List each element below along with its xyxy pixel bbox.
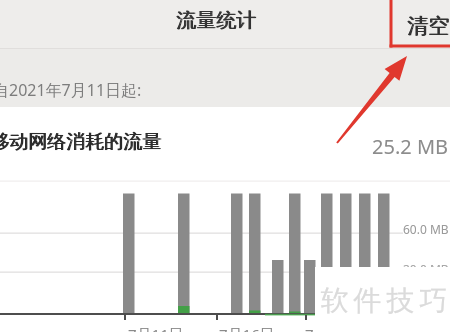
staticText: 移动网络消耗的流量 xyxy=(0,130,161,154)
staticText: 软件技巧 xyxy=(318,283,450,318)
staticText: 清空 xyxy=(407,13,449,39)
staticText: 60.0 MB xyxy=(403,221,449,237)
staticText: 30.0 MB xyxy=(403,261,449,277)
staticText: 流量统计 xyxy=(176,8,256,33)
staticText: 流量统计 xyxy=(176,8,256,33)
staticText: 25.2 MB xyxy=(372,133,449,160)
staticText: 移动网络消耗的流量 xyxy=(0,130,162,154)
staticText: 自2021年7月11日起: xyxy=(0,79,142,101)
staticText: 移动网络消耗的流量 xyxy=(0,130,161,154)
staticText: 7月11日 xyxy=(128,324,184,332)
staticText: 清空 xyxy=(408,13,450,39)
staticText: 流量统计 xyxy=(177,8,257,33)
staticText: 清空 xyxy=(407,13,449,39)
button[interactable]: 清空 xyxy=(406,0,450,46)
staticText: 7月21日 xyxy=(305,324,361,332)
staticText: 7月16日 xyxy=(219,324,275,332)
